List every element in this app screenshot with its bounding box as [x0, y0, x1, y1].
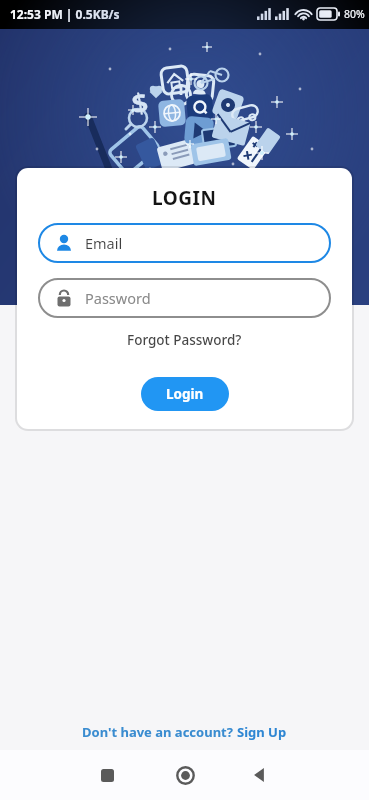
staticText: Login [166, 385, 204, 403]
staticText: Email [85, 233, 123, 253]
staticText: Password [85, 288, 151, 308]
staticText: 12:53 PM | 0.5KB/s [10, 6, 120, 22]
staticText: Sign Up [237, 723, 287, 741]
button[interactable]: Password [38, 278, 331, 318]
button[interactable] [247, 763, 271, 787]
button[interactable] [95, 763, 119, 787]
button[interactable]: Don't have an account? [82, 723, 287, 741]
button[interactable] [172, 762, 198, 788]
button[interactable]: Forgot Password? [127, 331, 242, 349]
staticText: Don't have an account? [82, 723, 237, 741]
button[interactable]: Login [141, 377, 229, 411]
staticText: LOGIN [152, 185, 217, 211]
button[interactable]: Email [38, 223, 331, 263]
staticText: $ [129, 83, 151, 122]
staticText: 80% [344, 7, 365, 21]
